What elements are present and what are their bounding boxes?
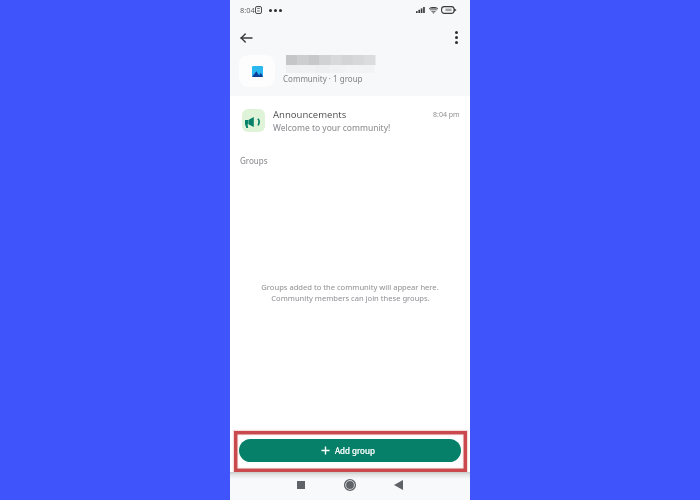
button[interactable]: Add group [239,439,461,462]
button[interactable]: More options [445,26,467,48]
staticText: Groups added to the community will appea… [261,282,439,292]
button[interactable]: Home [339,474,360,495]
staticText: 8:04 [240,5,255,15]
staticText: Groups [240,155,268,166]
staticText: Add group [335,445,375,456]
staticText: Community members can join these groups. [271,293,430,303]
button[interactable]: Community photo [239,55,275,87]
button[interactable]: Community photo [230,50,470,92]
button[interactable]: Recent apps [290,474,311,495]
staticText: Announcements [273,108,347,121]
staticText: 8:04 pm [433,110,460,120]
staticText: Community · 1 group [283,73,363,84]
button[interactable]: Back [235,27,257,49]
button[interactable]: Announcements [230,99,470,141]
button[interactable]: Back [388,474,409,495]
staticText: Welcome to your community! [273,122,391,134]
